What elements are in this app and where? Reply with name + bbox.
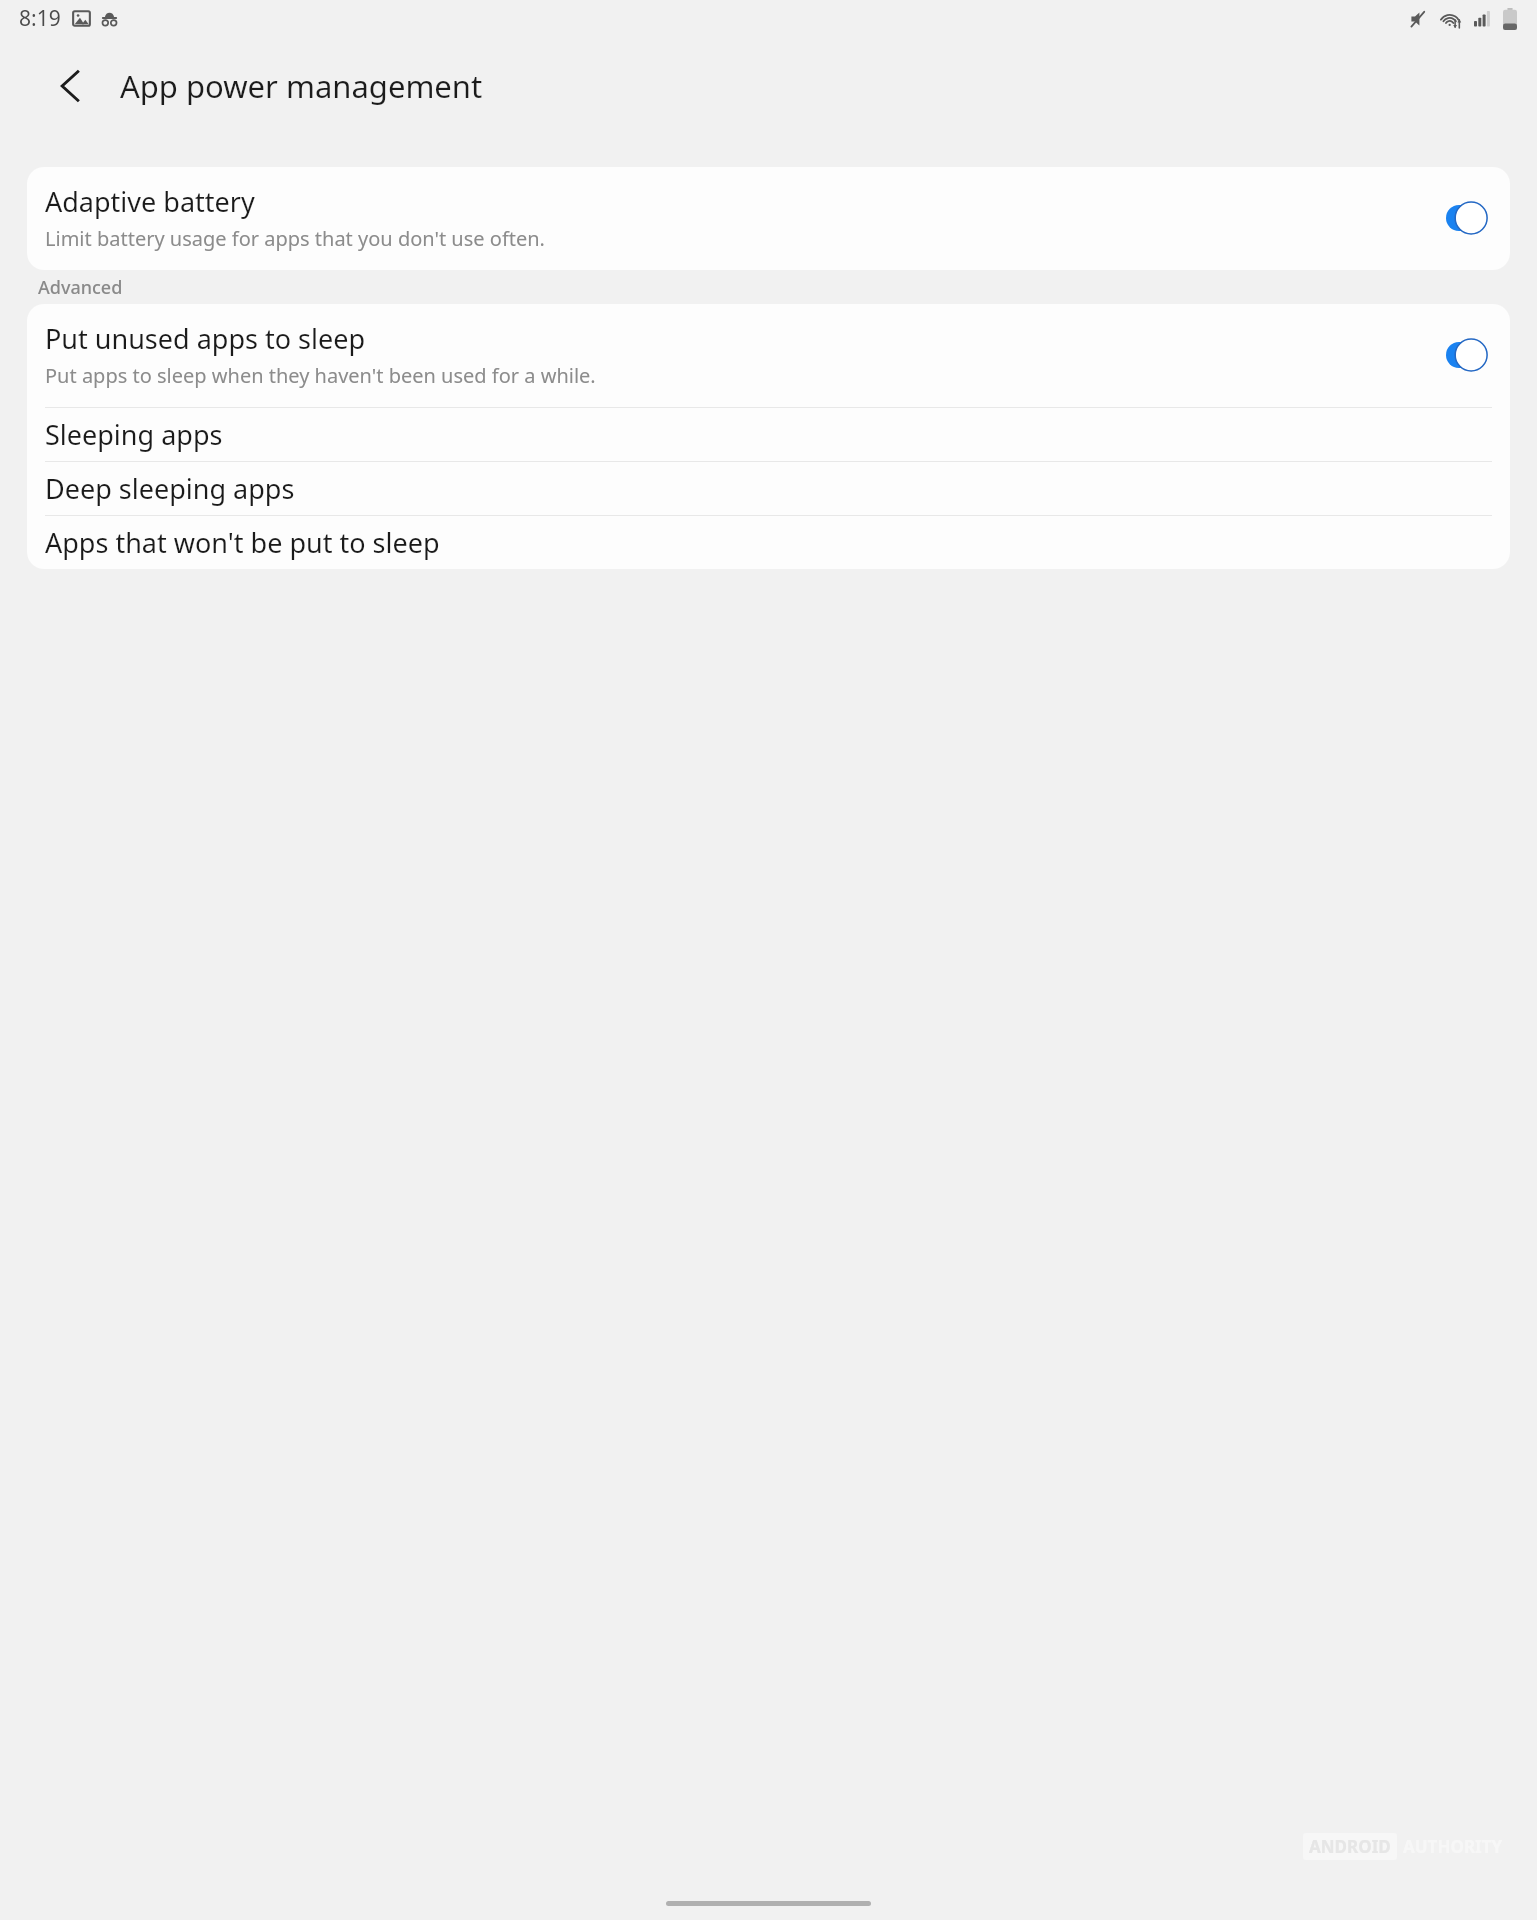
staticText: ANDROID bbox=[1309, 1835, 1391, 1858]
staticText: 8:19 bbox=[19, 4, 61, 33]
button[interactable]: Put unused apps to sleep bbox=[27, 304, 1510, 407]
staticText: Put apps to sleep when they haven't been… bbox=[45, 362, 596, 389]
button[interactable]: Apps that won't be put to sleep bbox=[27, 516, 1510, 569]
staticText: Adaptive battery bbox=[45, 183, 255, 220]
button[interactable]: Deep sleeping apps bbox=[27, 462, 1510, 515]
staticText: Limit battery usage for apps that you do… bbox=[45, 225, 545, 252]
staticText: Deep sleeping apps bbox=[45, 470, 295, 507]
button[interactable]: Sleeping apps bbox=[27, 408, 1510, 461]
staticText: Put unused apps to sleep bbox=[45, 320, 366, 357]
staticText: Apps that won't be put to sleep bbox=[45, 524, 440, 561]
button[interactable]: Adaptive battery bbox=[27, 167, 1510, 270]
button[interactable]: Toggle on bbox=[1446, 201, 1490, 235]
staticText: Sleeping apps bbox=[45, 416, 223, 453]
staticText: App power management bbox=[120, 65, 483, 107]
button[interactable]: Toggle on bbox=[1446, 338, 1490, 372]
staticText: Advanced bbox=[38, 275, 123, 300]
button[interactable]: Back bbox=[40, 55, 102, 117]
